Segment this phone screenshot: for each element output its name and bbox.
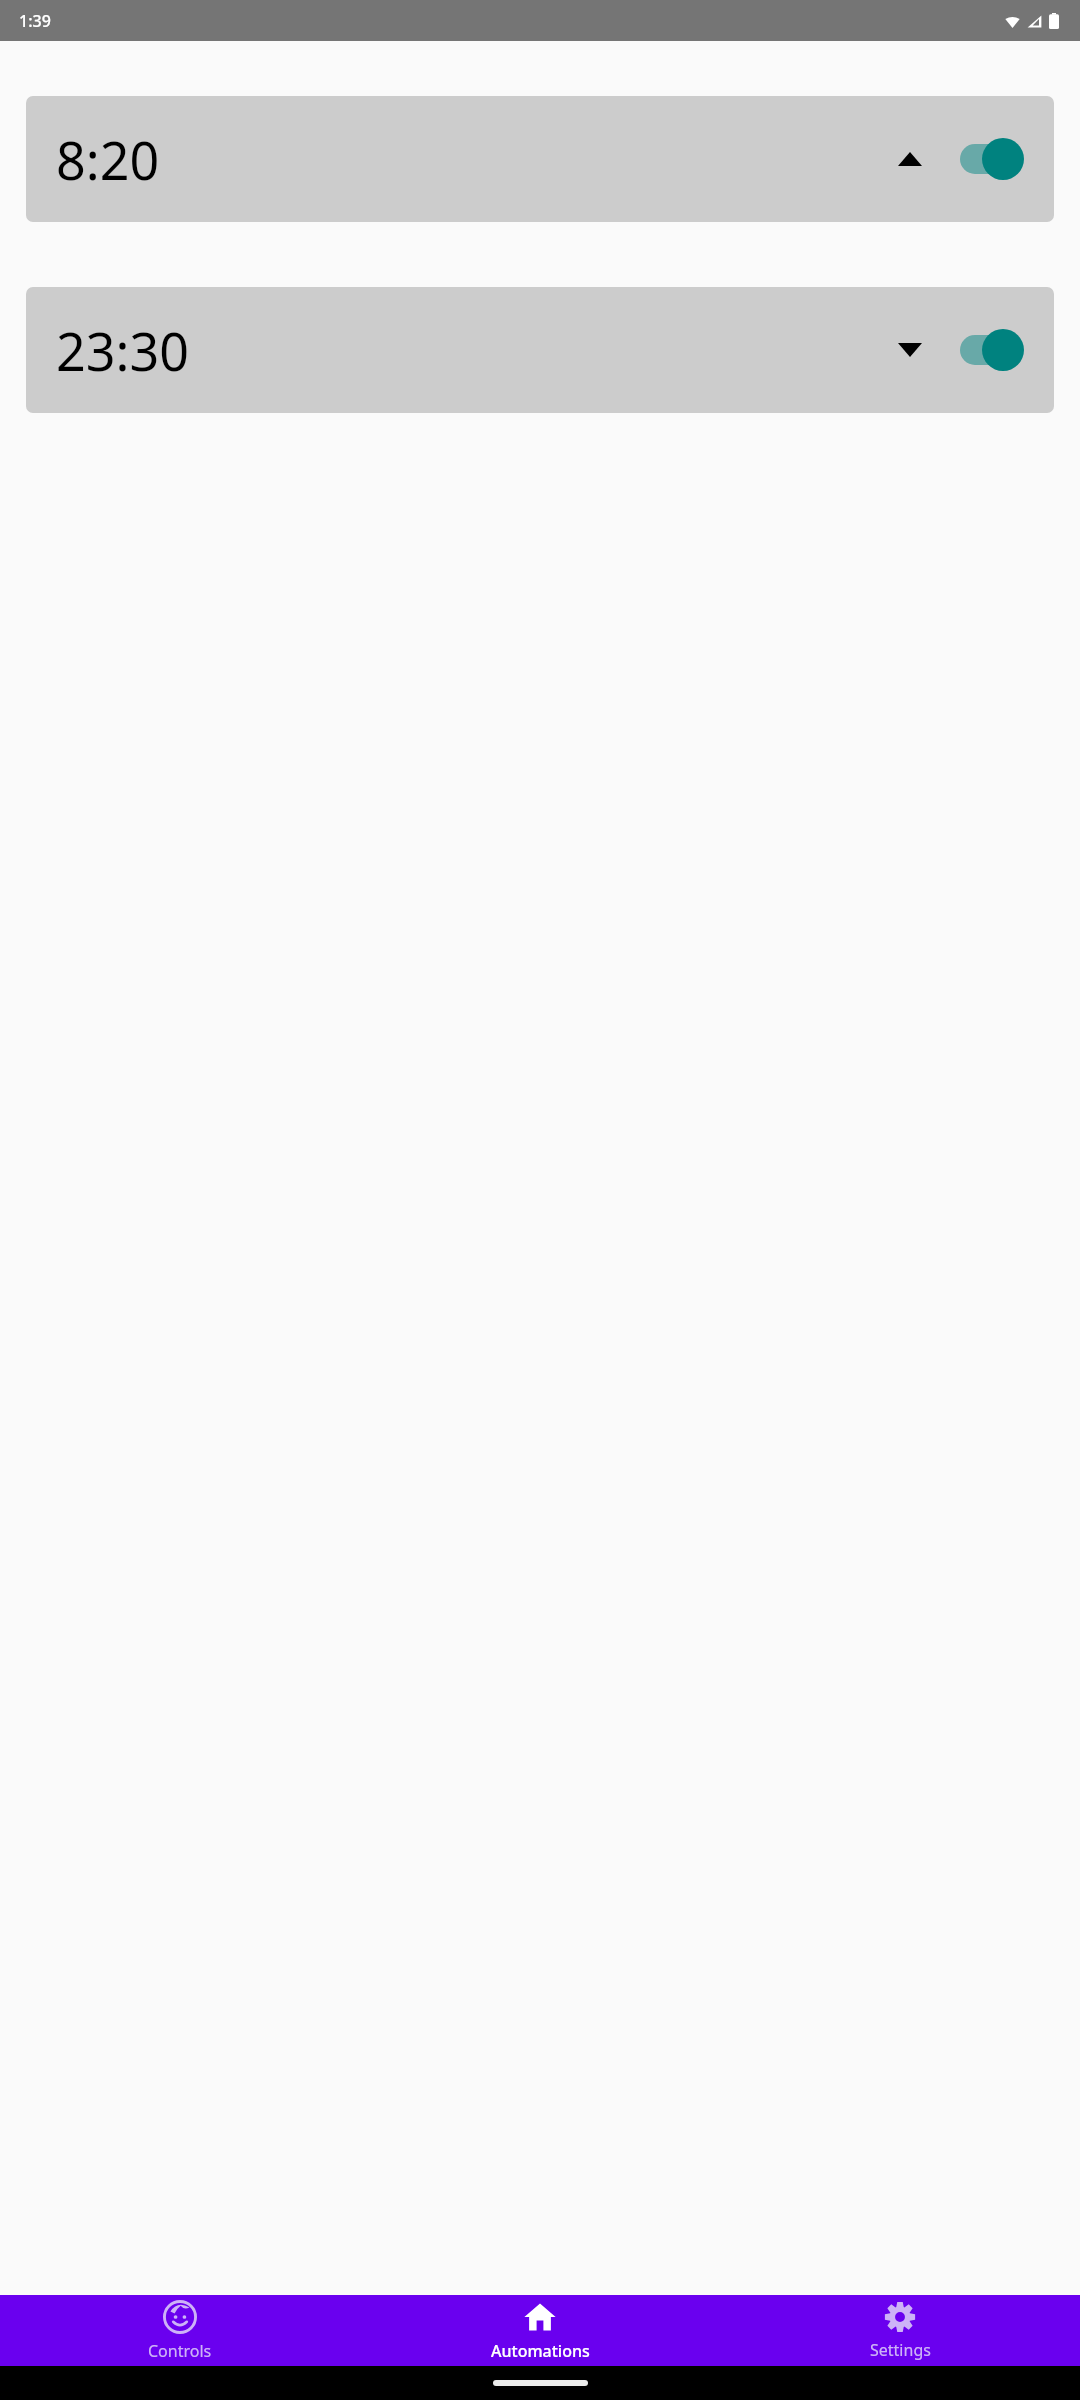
button[interactable]: Controls: [0, 2295, 360, 2366]
button[interactable]: Alarm enabled: [960, 329, 1024, 371]
button[interactable]: Automations: [360, 2295, 720, 2366]
staticText: Automations: [491, 2340, 590, 2362]
button[interactable]: Alarm enabled: [960, 138, 1024, 180]
staticText: 23:30: [56, 315, 189, 386]
button[interactable]: Collapse: [888, 137, 932, 181]
staticText: 1:39: [19, 10, 51, 32]
button[interactable]: 23:30: [26, 287, 1054, 413]
staticText: Settings: [870, 2339, 931, 2361]
staticText: 8:20: [56, 124, 160, 195]
button[interactable]: Expand: [888, 328, 932, 372]
button[interactable]: Settings: [720, 2295, 1080, 2366]
button[interactable]: 8:20: [26, 96, 1054, 222]
staticText: Controls: [148, 2340, 212, 2362]
